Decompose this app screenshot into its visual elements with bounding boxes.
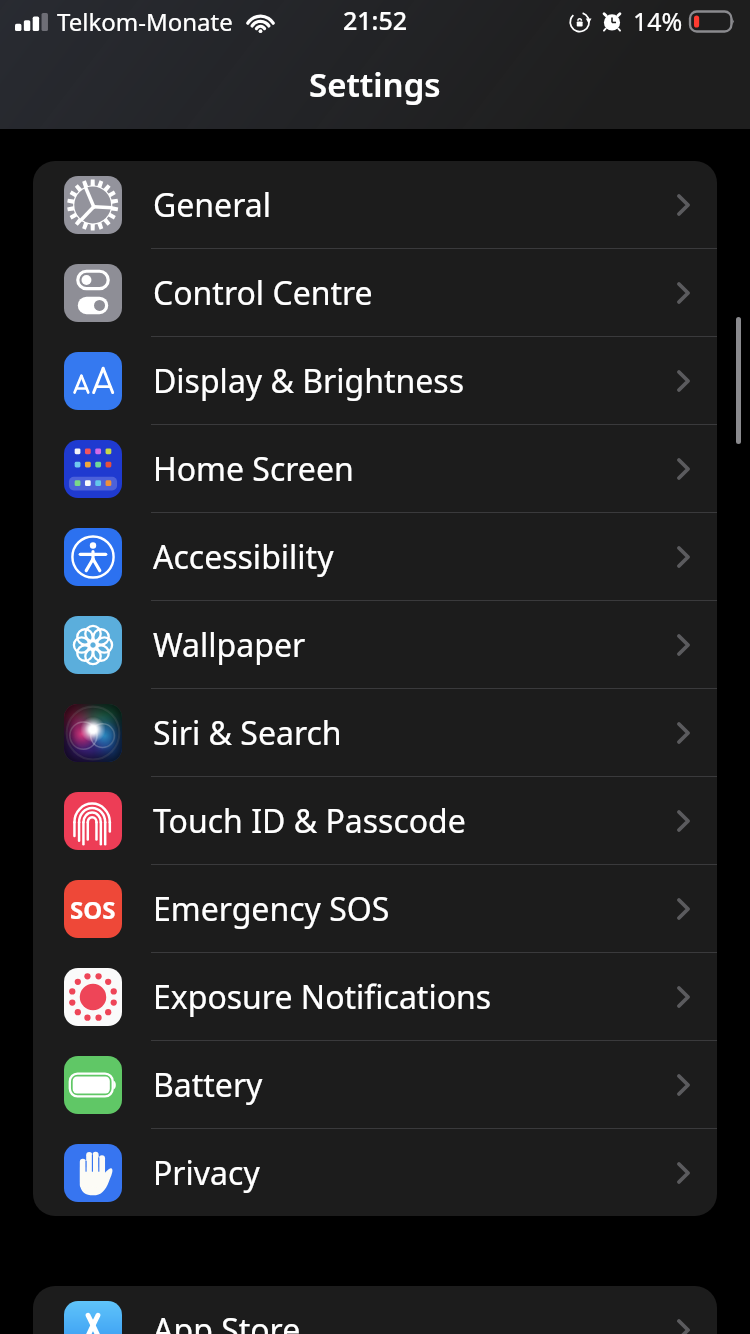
button[interactable]: Accessibility: [33, 513, 717, 601]
staticText: Settings: [309, 62, 441, 107]
staticText: 21:52: [343, 3, 408, 37]
button[interactable]: Home Screen: [33, 425, 717, 513]
staticText: Siri & Search: [153, 711, 342, 755]
button[interactable]: Control Centre: [33, 249, 717, 337]
staticText: Emergency SOS: [153, 887, 390, 931]
staticText: Accessibility: [153, 535, 334, 579]
button[interactable]: App Store: [33, 1286, 717, 1334]
button[interactable]: Touch ID & Passcode: [33, 777, 717, 865]
staticText: SOS: [70, 893, 116, 926]
button[interactable]: Battery: [33, 1041, 717, 1129]
staticText: Home Screen: [153, 447, 354, 491]
button[interactable]: Display & Brightness: [33, 337, 717, 425]
button[interactable]: Exposure Notifications: [33, 953, 717, 1041]
staticText: Control Centre: [153, 271, 373, 315]
staticText: Wallpaper: [153, 623, 306, 667]
button[interactable]: Siri & Search: [33, 689, 717, 777]
staticText: Telkom-Monate: [57, 5, 233, 38]
button[interactable]: Privacy: [33, 1129, 717, 1216]
staticText: Privacy: [153, 1151, 260, 1195]
staticText: General: [153, 183, 271, 227]
staticText: Display & Brightness: [153, 359, 464, 403]
button[interactable]: SOS: [33, 865, 717, 953]
staticText: Battery: [153, 1063, 263, 1107]
staticText: Exposure Notifications: [153, 975, 492, 1019]
staticText: App Store: [153, 1308, 301, 1334]
staticText: Touch ID & Passcode: [153, 799, 466, 843]
button[interactable]: Wallpaper: [33, 601, 717, 689]
staticText: 14%: [633, 4, 683, 38]
button[interactable]: General: [33, 161, 717, 249]
